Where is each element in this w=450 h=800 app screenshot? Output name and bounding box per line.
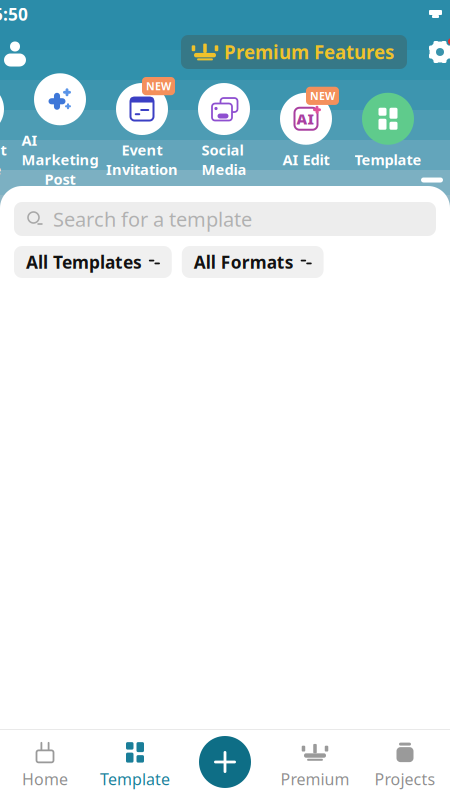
button[interactable]: AI [265,82,347,174]
staticText: Template [100,768,170,790]
staticText: Invitation [106,159,178,179]
staticText: NEW [146,79,171,93]
staticText: AI Marketing [21,130,98,169]
staticText: Image [0,159,1,179]
staticText: Premium Features [224,40,394,64]
button[interactable]: Template [347,82,429,174]
button[interactable]: All Templates [14,246,172,278]
staticText: AI [296,109,313,128]
staticText: NEW [310,89,335,103]
staticText: Projects [374,768,435,790]
button[interactable]: Projects [360,737,450,793]
button[interactable]: All Formats [182,246,324,278]
staticText: All Templates [26,250,142,273]
staticText: Event [121,140,162,159]
staticText: AI Edit [282,150,329,169]
button[interactable]: Template [90,737,180,793]
button[interactable]: Home [0,737,90,793]
staticText: All Formats [194,250,294,273]
staticText: Premium [280,768,349,790]
button[interactable]: Product [0,82,19,174]
button[interactable]: Create [196,733,254,791]
staticText: 5:50 [0,2,28,25]
staticText: Product [0,140,6,159]
button[interactable]: Premium [270,737,360,793]
staticText: Home [22,768,68,790]
button[interactable]: Premium Features [181,35,407,69]
staticText: Post [44,169,75,189]
button[interactable]: Social Media [183,82,265,174]
staticText: Template [354,150,421,169]
staticText: Social Media [201,140,246,179]
button[interactable]: NEW [101,82,183,174]
button[interactable]: Settings [423,35,450,69]
staticText: Search for a template [53,206,252,232]
button[interactable]: Profile [0,31,37,73]
button[interactable]: AI Marketing [19,82,101,174]
